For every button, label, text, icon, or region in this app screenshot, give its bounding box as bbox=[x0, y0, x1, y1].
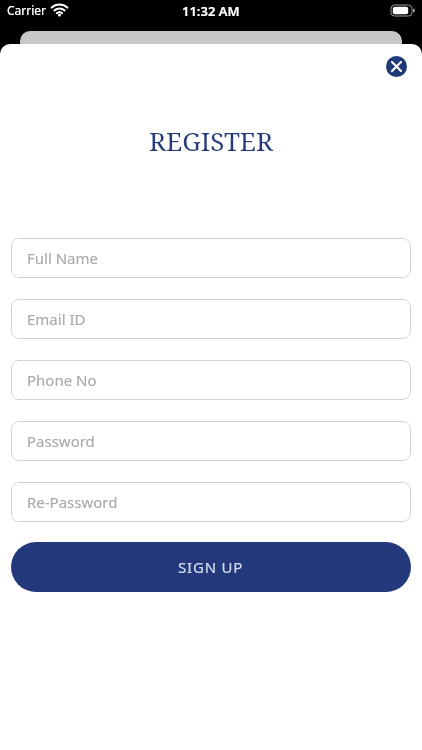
button[interactable]: Email ID bbox=[11, 299, 411, 339]
staticText: Email ID bbox=[27, 309, 86, 329]
staticText: Password bbox=[27, 431, 95, 451]
staticText: Re-Password bbox=[27, 492, 118, 512]
button[interactable]: Password bbox=[11, 421, 411, 461]
staticText: Phone No bbox=[27, 370, 97, 390]
button[interactable]: SIGN UP bbox=[11, 542, 411, 592]
staticText: REGISTER bbox=[0, 123, 422, 158]
button[interactable] bbox=[386, 56, 407, 77]
staticText: SIGN UP bbox=[178, 557, 244, 577]
button[interactable]: Full Name bbox=[11, 238, 411, 278]
button[interactable]: Re-Password bbox=[11, 482, 411, 522]
staticText: 11:32 AM bbox=[182, 2, 240, 20]
button[interactable]: Phone No bbox=[11, 360, 411, 400]
staticText: Carrier bbox=[7, 2, 47, 18]
staticText: Full Name bbox=[27, 248, 98, 268]
